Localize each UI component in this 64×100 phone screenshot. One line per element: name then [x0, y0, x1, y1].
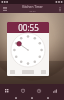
button[interactable]: Alarm: [16, 84, 32, 100]
staticText: Kitchen Timer: [22, 5, 43, 9]
button[interactable]: More options: [55, 4, 64, 13]
button[interactable]: Timer dial: [11, 33, 45, 67]
button[interactable]: Stopwatch: [48, 84, 64, 100]
button[interactable]: Clock: [32, 84, 48, 100]
staticText: 00:55: [29, 9, 36, 12]
button[interactable]: Timers: [0, 84, 16, 100]
button[interactable]: Navigate up: [0, 4, 9, 13]
button[interactable]: 00:55: [7, 22, 49, 33]
staticText: 00:55: [18, 22, 39, 33]
